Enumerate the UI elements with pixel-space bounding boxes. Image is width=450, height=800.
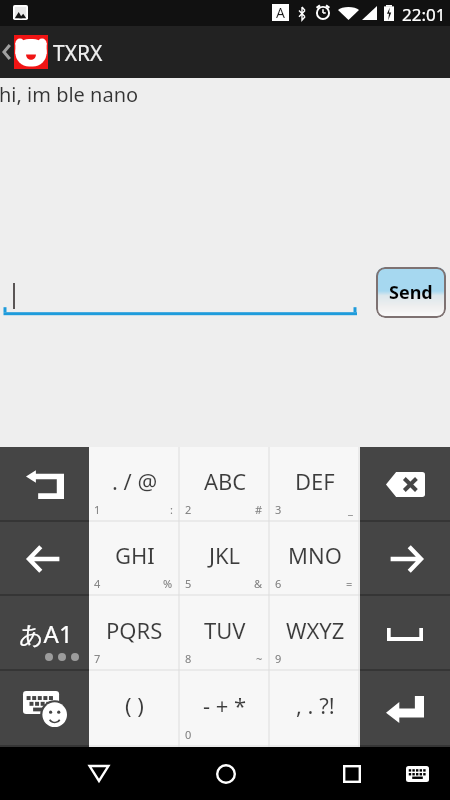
button[interactable]: ABC [180,447,270,522]
staticText: 6 [275,576,282,591]
button[interactable]: Home [203,747,248,800]
staticText: 8 [185,651,192,666]
staticText: あA1 [19,617,73,650]
staticText: 9 [275,651,282,666]
staticText: % [163,576,173,591]
staticText: 3 [275,502,282,517]
button[interactable]: Back [76,747,121,800]
staticText: Send [389,280,433,305]
button[interactable]: JKL [180,522,270,596]
button[interactable]: Cursor left [0,522,89,596]
staticText: # [255,502,263,517]
staticText: A [276,3,285,20]
button[interactable]: DEF [270,447,360,522]
button[interactable]: TUV [180,596,270,671]
button[interactable]: Backspace [360,447,450,522]
button[interactable]: WXYZ [270,596,360,671]
button[interactable]: ( ) [89,671,180,747]
button[interactable]: Enter [360,671,450,747]
staticText: PQRS [106,615,163,645]
staticText: hi, im ble nano [0,81,139,108]
button[interactable]: Input mode [0,596,89,671]
staticText: : [170,502,173,517]
staticText: ABC [204,466,247,496]
staticText: 4 [94,576,101,591]
staticText: 1 [94,502,101,517]
button[interactable]: . / @ [89,447,180,522]
staticText: TXRX [53,39,103,68]
staticText: - + * [203,690,247,720]
button[interactable]: App icon [14,35,48,69]
staticText: JKL [209,540,241,570]
button[interactable]: Back [0,26,14,78]
staticText: WXYZ [286,615,345,645]
button[interactable]: , . ?! [270,671,360,747]
button[interactable]: - + * [180,671,270,747]
staticText: GHI [115,540,155,570]
button[interactable]: Cursor right [360,522,450,596]
staticText: 0 [185,727,192,742]
staticText: TUV [204,615,246,645]
button[interactable]: Send [376,267,446,318]
button[interactable]: MNO [270,522,360,596]
staticText: & [254,576,263,591]
staticText: MNO [288,540,342,570]
button[interactable]: Undo [0,447,89,522]
staticText: _ [348,502,353,517]
button[interactable]: Emoji keyboard [0,671,89,747]
staticText: 22:01 [402,3,446,26]
staticText: 5 [185,576,192,591]
button[interactable]: GHI [89,522,180,596]
staticText: = [346,576,353,591]
staticText: 2 [185,502,192,517]
staticText: 7 [94,651,101,666]
staticText: . / @ [112,466,158,496]
staticText: ~ [256,651,263,666]
staticText: DEF [295,466,335,496]
staticText: ( ) [125,690,144,720]
button[interactable]: Message input [3,275,357,315]
staticText: , . ?! [296,690,335,720]
button[interactable]: Space [360,596,450,671]
button[interactable]: Switch keyboard [398,747,437,800]
button[interactable]: PQRS [89,596,180,671]
button[interactable]: Recent apps [329,747,374,800]
